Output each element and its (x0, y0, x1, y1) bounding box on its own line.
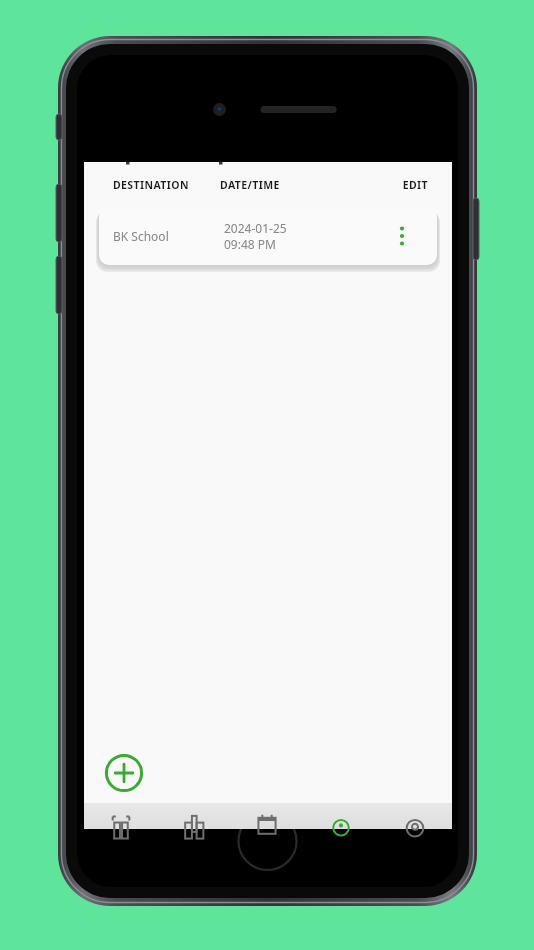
button[interactable]: Add trip (102, 751, 146, 795)
staticText: EDIT (355, 178, 428, 192)
button[interactable]: Dashboard (84, 803, 157, 829)
button[interactable]: Stats (157, 803, 230, 829)
staticText: 09:48 PM (224, 236, 276, 252)
staticText: DESTINATION (113, 178, 220, 192)
staticText: BK School (113, 228, 224, 244)
staticText: 2024-01-25 (224, 220, 287, 236)
button[interactable]: Calendar (230, 803, 304, 829)
button[interactable]: BK School (99, 207, 437, 265)
button[interactable]: Trips (304, 803, 378, 829)
staticText: DATE/TIME (220, 178, 355, 192)
button[interactable]: Profile (378, 803, 452, 829)
button[interactable]: More options (348, 207, 437, 265)
